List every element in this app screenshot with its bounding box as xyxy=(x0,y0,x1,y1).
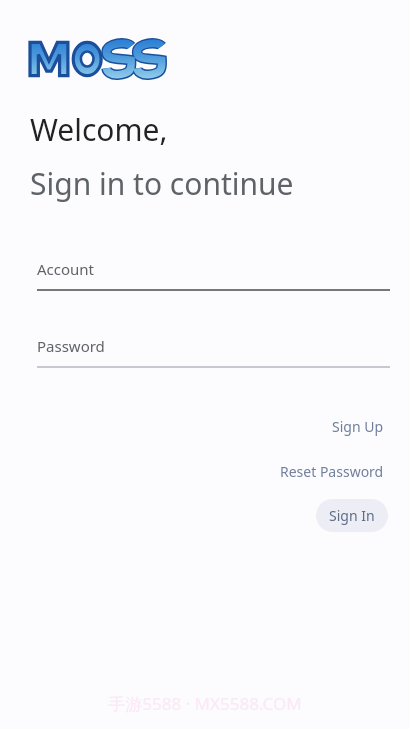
button[interactable]: Reset Password xyxy=(276,459,388,484)
staticText: Sign in to continue xyxy=(30,163,294,204)
staticText: Welcome, xyxy=(30,109,168,150)
staticText: Reset Password xyxy=(280,462,384,481)
staticText: Sign In xyxy=(329,506,375,525)
staticText: Password xyxy=(37,336,105,356)
button[interactable]: Account xyxy=(37,252,390,291)
staticText: Account xyxy=(37,259,95,279)
button[interactable]: Password xyxy=(37,329,390,368)
button[interactable]: Sign In xyxy=(316,499,388,532)
button[interactable]: Sign Up xyxy=(328,414,388,439)
staticText: 手游5588 · MX5588.COM xyxy=(0,692,410,715)
other: MOSS logo xyxy=(30,40,163,78)
staticText: Sign Up xyxy=(332,417,384,436)
